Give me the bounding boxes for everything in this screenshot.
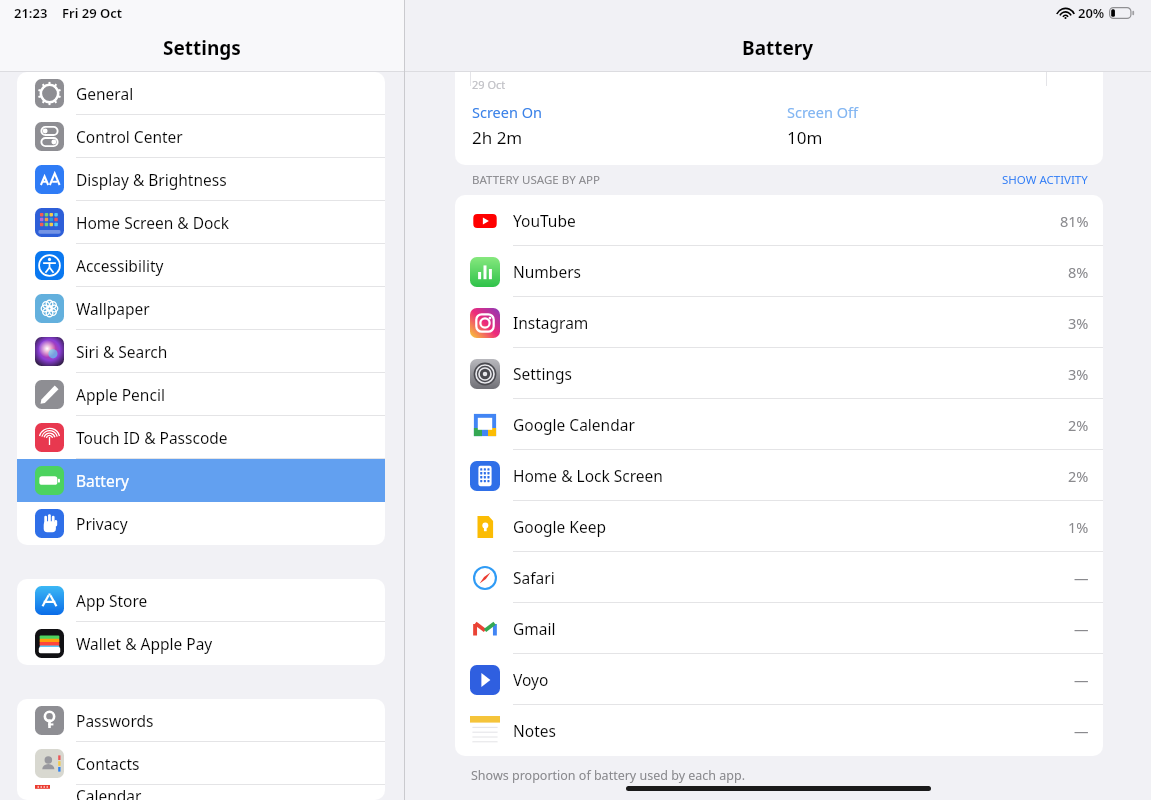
button[interactable]: Gmail bbox=[455, 603, 1103, 654]
button[interactable]: Settings bbox=[455, 348, 1103, 399]
button[interactable]: Accessibility bbox=[17, 244, 385, 287]
staticText: Battery bbox=[76, 470, 130, 491]
staticText: Control Center bbox=[76, 126, 183, 147]
staticText: SHOW ACTIVITY bbox=[1002, 172, 1088, 188]
staticText: 3% bbox=[1068, 313, 1089, 333]
staticText: — bbox=[1074, 721, 1089, 741]
button[interactable]: Display & Brightness bbox=[17, 158, 385, 201]
staticText: Wallet & Apple Pay bbox=[76, 633, 213, 654]
staticText: Passwords bbox=[76, 710, 154, 731]
staticText: Home & Lock Screen bbox=[513, 465, 663, 486]
staticText: Contacts bbox=[76, 753, 140, 774]
button[interactable]: Wallpaper bbox=[17, 287, 385, 330]
staticText: 8% bbox=[1068, 262, 1089, 282]
staticText: — bbox=[1074, 568, 1089, 588]
staticText: Settings bbox=[513, 363, 572, 384]
staticText: Display & Brightness bbox=[76, 169, 227, 190]
staticText: General bbox=[76, 83, 134, 104]
staticText: 10m bbox=[787, 126, 823, 149]
button[interactable]: Notes bbox=[455, 705, 1103, 756]
staticText: Numbers bbox=[513, 261, 581, 282]
staticText: 20% bbox=[1078, 4, 1105, 22]
staticText: 2h 2m bbox=[472, 126, 523, 149]
button[interactable]: Battery bbox=[17, 459, 385, 502]
staticText: BATTERY USAGE BY APP bbox=[472, 172, 600, 188]
button[interactable]: Home Screen & Dock bbox=[17, 201, 385, 244]
staticText: Notes bbox=[513, 720, 556, 741]
button[interactable]: Contacts bbox=[17, 742, 385, 785]
button[interactable]: Voyo bbox=[455, 654, 1103, 705]
staticText: — bbox=[1074, 619, 1089, 639]
button[interactable]: Instagram bbox=[455, 297, 1103, 348]
staticText: 81% bbox=[1060, 211, 1089, 231]
button[interactable]: Passwords bbox=[17, 699, 385, 742]
button[interactable]: General bbox=[17, 72, 385, 115]
button[interactable]: YouTube bbox=[455, 195, 1103, 246]
staticText: Siri & Search bbox=[76, 341, 168, 362]
staticText: Shows proportion of battery used by each… bbox=[471, 767, 746, 784]
staticText: Google Keep bbox=[513, 516, 606, 537]
staticText: 2% bbox=[1068, 415, 1089, 435]
staticText: 2% bbox=[1068, 466, 1089, 486]
staticText: Accessibility bbox=[76, 255, 164, 276]
staticText: 21:23 bbox=[14, 4, 48, 22]
staticText: 1% bbox=[1068, 517, 1089, 537]
staticText: App Store bbox=[76, 590, 148, 611]
button[interactable]: Calendar bbox=[17, 785, 385, 800]
button[interactable]: Google Keep bbox=[455, 501, 1103, 552]
button[interactable]: Numbers bbox=[455, 246, 1103, 297]
staticText: Privacy bbox=[76, 513, 128, 534]
staticText: Gmail bbox=[513, 618, 556, 639]
button[interactable]: Home & Lock Screen bbox=[455, 450, 1103, 501]
staticText: Safari bbox=[513, 567, 555, 588]
button[interactable]: Wallet & Apple Pay bbox=[17, 622, 385, 665]
button[interactable]: App Store bbox=[17, 579, 385, 622]
staticText: Screen Off bbox=[787, 102, 859, 122]
button[interactable]: SHOW ACTIVITY bbox=[1002, 172, 1088, 188]
staticText: Google Calendar bbox=[513, 414, 635, 435]
staticText: Voyo bbox=[513, 669, 549, 690]
staticText: Settings bbox=[163, 35, 241, 61]
staticText: Screen On bbox=[472, 102, 542, 122]
staticText: 29 Oct bbox=[472, 77, 506, 92]
staticText: 3% bbox=[1068, 364, 1089, 384]
staticText: Calendar bbox=[76, 785, 142, 800]
staticText: Instagram bbox=[513, 312, 589, 333]
staticText: Touch ID & Passcode bbox=[76, 427, 228, 448]
button[interactable]: Google Calendar bbox=[455, 399, 1103, 450]
staticText: — bbox=[1074, 670, 1089, 690]
button[interactable]: Touch ID & Passcode bbox=[17, 416, 385, 459]
staticText: Battery bbox=[742, 35, 814, 61]
staticText: Home Screen & Dock bbox=[76, 212, 230, 233]
button[interactable]: Control Center bbox=[17, 115, 385, 158]
button[interactable]: Siri & Search bbox=[17, 330, 385, 373]
button[interactable]: Privacy bbox=[17, 502, 385, 545]
staticText: Apple Pencil bbox=[76, 384, 165, 405]
staticText: YouTube bbox=[513, 210, 576, 231]
other: Battery 20 percent bbox=[1109, 7, 1135, 19]
button[interactable]: Safari bbox=[455, 552, 1103, 603]
staticText: Fri 29 Oct bbox=[62, 4, 122, 22]
other: Wi-Fi bbox=[1058, 7, 1073, 19]
staticText: Wallpaper bbox=[76, 298, 150, 319]
button[interactable]: Apple Pencil bbox=[17, 373, 385, 416]
